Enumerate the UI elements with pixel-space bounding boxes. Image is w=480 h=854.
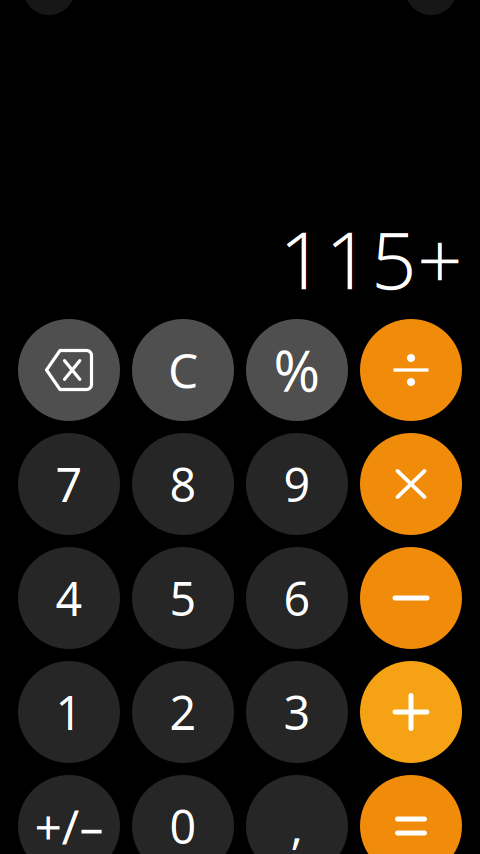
button[interactable]: 4 (18, 547, 120, 649)
staticText: 5 (169, 567, 196, 629)
staticText: 4 (55, 567, 82, 629)
button[interactable]: 2 (132, 661, 234, 763)
button[interactable]: 6 (246, 547, 348, 649)
staticText: 3 (283, 681, 310, 743)
button[interactable]: % (246, 319, 348, 421)
staticText: C (168, 338, 198, 402)
staticText: 115+ (279, 205, 463, 311)
button[interactable]: Subtract (360, 547, 462, 649)
button[interactable]: Multiply (360, 433, 462, 535)
button[interactable]: 3 (246, 661, 348, 763)
button[interactable]: Menu (23, 0, 75, 15)
staticText: , (290, 795, 303, 854)
staticText: 8 (169, 453, 196, 515)
button[interactable]: 7 (18, 433, 120, 535)
button[interactable]: 0 (132, 775, 234, 854)
button[interactable]: Equals (360, 775, 462, 854)
staticText: 1 (55, 681, 82, 743)
staticText: 2 (169, 681, 196, 743)
button[interactable]: Add (360, 661, 462, 763)
staticText: 0 (169, 795, 196, 854)
button[interactable]: 5 (132, 547, 234, 649)
button[interactable]: 8 (132, 433, 234, 535)
button[interactable]: C (132, 319, 234, 421)
button[interactable]: 9 (246, 433, 348, 535)
staticText: 9 (283, 453, 310, 515)
staticText: 6 (283, 567, 310, 629)
button[interactable]: History (405, 0, 457, 15)
staticText: 7 (55, 453, 82, 515)
staticText: % (273, 333, 320, 407)
button[interactable]: , (246, 775, 348, 854)
button[interactable]: +/– (18, 775, 120, 854)
button[interactable]: 1 (18, 661, 120, 763)
staticText: +/– (34, 794, 103, 854)
button[interactable]: Divide (360, 319, 462, 421)
button[interactable]: Delete (18, 319, 120, 421)
